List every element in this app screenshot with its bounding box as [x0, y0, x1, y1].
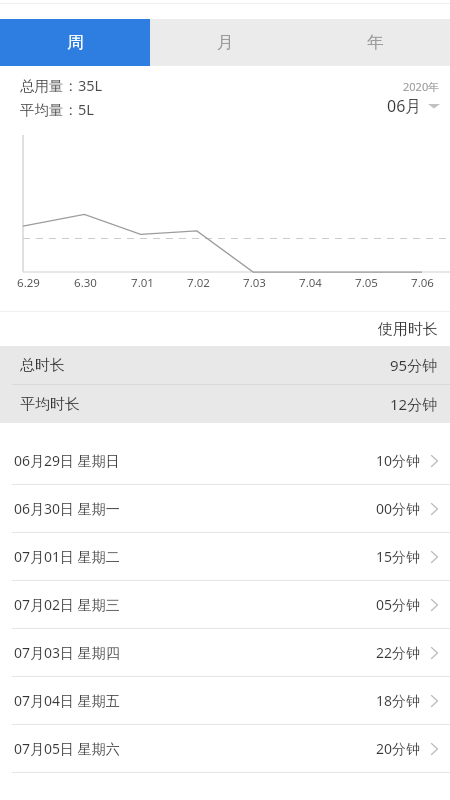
staticText: 18分钟	[376, 691, 421, 710]
button[interactable]: 周	[0, 19, 150, 66]
staticText: 7.04	[299, 275, 322, 291]
staticText: 10分钟	[376, 451, 421, 470]
staticText: 7.03	[243, 275, 266, 291]
staticText: 22分钟	[376, 643, 421, 662]
staticText: 07月02日 星期三	[14, 595, 120, 614]
staticText: 2020年	[403, 79, 440, 94]
staticText: 07月03日 星期四	[14, 643, 120, 662]
staticText: 06月30日 星期一	[14, 499, 120, 518]
staticText: 平均量：5L	[20, 99, 94, 119]
button[interactable]: 月	[150, 19, 300, 66]
button[interactable]: 06月29日 星期日	[0, 437, 450, 485]
button[interactable]: 07月03日 星期四	[0, 629, 450, 677]
staticText: 06月29日 星期日	[14, 451, 120, 470]
staticText: 周	[67, 32, 84, 53]
staticText: 7.01	[131, 275, 154, 291]
staticText: 6.30	[74, 275, 97, 291]
staticText: 7.02	[187, 275, 210, 291]
button[interactable]: 06月30日 星期一	[0, 485, 450, 533]
staticText: 7.06	[411, 275, 434, 291]
button[interactable]: 年	[300, 19, 450, 66]
button[interactable]: 07月01日 星期二	[0, 533, 450, 581]
staticText: 月	[217, 32, 234, 53]
staticText: 20分钟	[376, 739, 421, 758]
staticText: 07月04日 星期五	[14, 691, 120, 710]
staticText: 06月	[387, 95, 422, 117]
staticText: 07月01日 星期二	[14, 547, 120, 566]
staticText: 平均时长	[20, 395, 80, 414]
staticText: 15分钟	[376, 547, 421, 566]
button[interactable]: 2020年	[387, 79, 440, 117]
staticText: 95分钟	[390, 355, 438, 375]
staticText: 12分钟	[390, 394, 438, 414]
staticText: 年	[367, 32, 384, 53]
staticText: 05分钟	[376, 595, 421, 614]
button[interactable]: 平均时长	[0, 385, 450, 423]
staticText: 7.05	[355, 275, 378, 291]
staticText: 07月05日 星期六	[14, 739, 120, 758]
button[interactable]: 07月04日 星期五	[0, 677, 450, 725]
staticText: 00分钟	[376, 499, 421, 518]
button[interactable]: 07月02日 星期三	[0, 581, 450, 629]
staticText: 6.29	[17, 275, 40, 291]
staticText: 总时长	[20, 356, 65, 375]
other: Select month	[428, 102, 440, 110]
staticText: 总用量：35L	[20, 75, 103, 95]
button[interactable]: 总时长	[0, 346, 450, 384]
staticText: 使用时长	[378, 320, 438, 339]
button[interactable]: 07月05日 星期六	[0, 725, 450, 773]
